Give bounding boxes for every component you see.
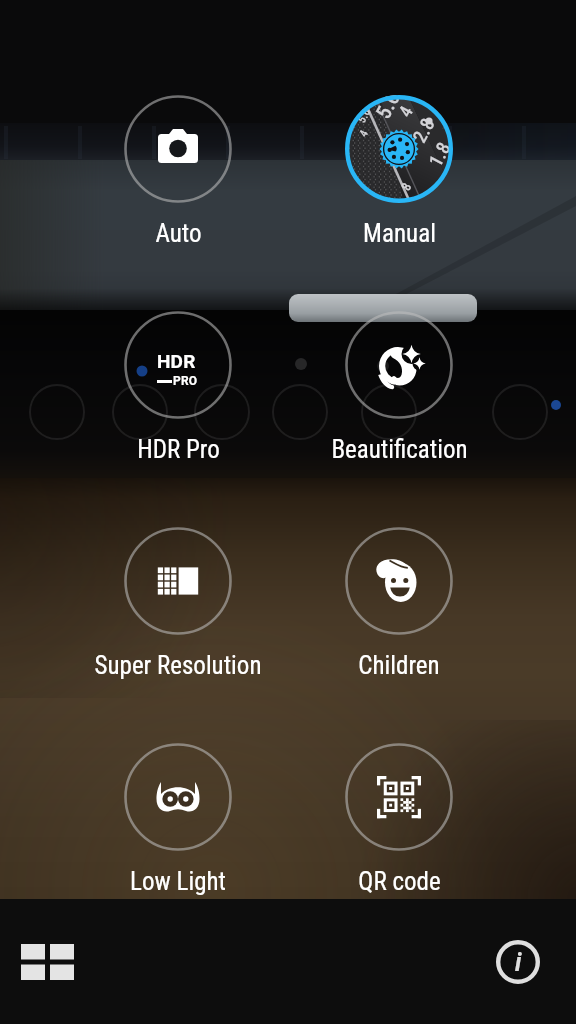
button[interactable]: All modes	[12, 927, 82, 997]
staticText: Beautification	[331, 435, 468, 464]
staticText: PRO	[173, 374, 198, 388]
staticText: HDR Pro	[137, 435, 220, 464]
staticText: Children	[358, 651, 440, 680]
staticText: Low Light	[130, 867, 226, 896]
staticText: 5.6	[371, 95, 406, 123]
staticText: Manual	[363, 219, 436, 248]
button[interactable]: HDR Pro	[68, 311, 288, 477]
button[interactable]: Children	[289, 527, 509, 693]
staticText: Auto	[155, 219, 202, 248]
staticText: i	[515, 947, 522, 977]
button[interactable]: Beautification	[289, 311, 509, 477]
button[interactable]: 5.6	[289, 95, 509, 261]
button[interactable]: Info	[490, 934, 546, 990]
staticText: Super Resolution	[94, 651, 262, 680]
staticText: 8	[398, 180, 415, 193]
staticText: QR code	[358, 867, 441, 896]
staticText: 1.8	[424, 138, 453, 170]
button[interactable]: QR code	[289, 743, 509, 909]
staticText: 4	[357, 128, 371, 139]
staticText: 5.6	[355, 106, 374, 125]
button[interactable]: Low Light	[68, 743, 288, 909]
button[interactable]: Super Resolution	[68, 527, 288, 693]
staticText: HDR	[157, 350, 196, 372]
staticText: 4	[394, 103, 417, 120]
staticText: 2.8	[408, 114, 439, 146]
button[interactable]: Auto	[68, 95, 288, 261]
